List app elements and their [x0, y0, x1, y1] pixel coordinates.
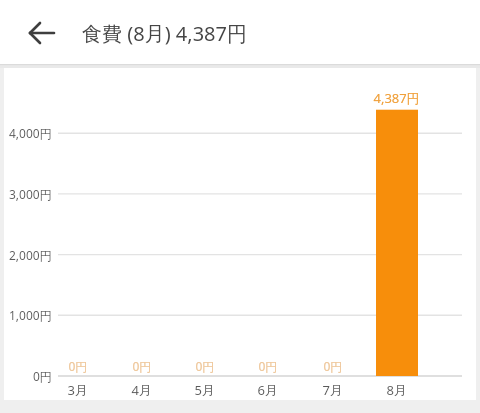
button[interactable]: Back	[0, 0, 56, 56]
